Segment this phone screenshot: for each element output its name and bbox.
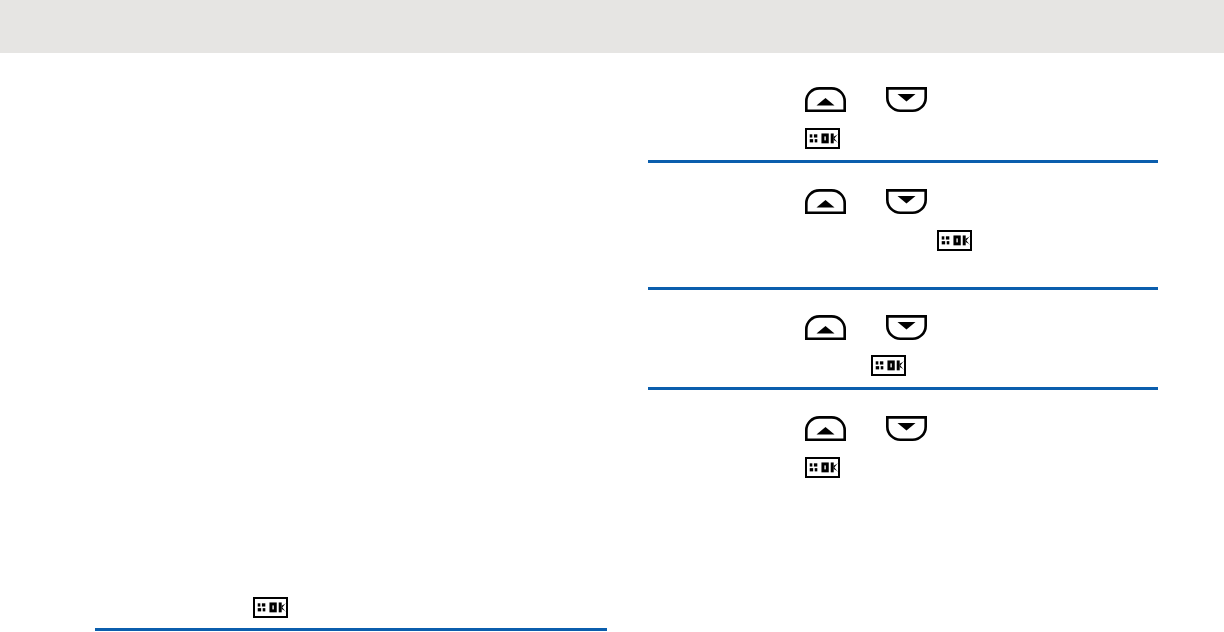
button[interactable]: Scroll up (805, 87, 846, 112)
button[interactable]: Scroll down (886, 189, 927, 214)
button[interactable]: OK menu button (871, 355, 906, 376)
button[interactable]: OK menu button (937, 230, 972, 251)
button[interactable]: OK menu button (253, 597, 288, 618)
button[interactable]: OK menu button (805, 128, 840, 149)
button[interactable]: Scroll down (886, 315, 927, 340)
button[interactable]: Scroll down (886, 87, 927, 112)
button[interactable]: Scroll up (805, 416, 846, 441)
button[interactable]: Scroll up (805, 315, 846, 340)
button[interactable]: OK menu button (805, 457, 840, 478)
button[interactable]: Scroll up (805, 189, 846, 214)
button[interactable]: Scroll down (886, 416, 927, 441)
